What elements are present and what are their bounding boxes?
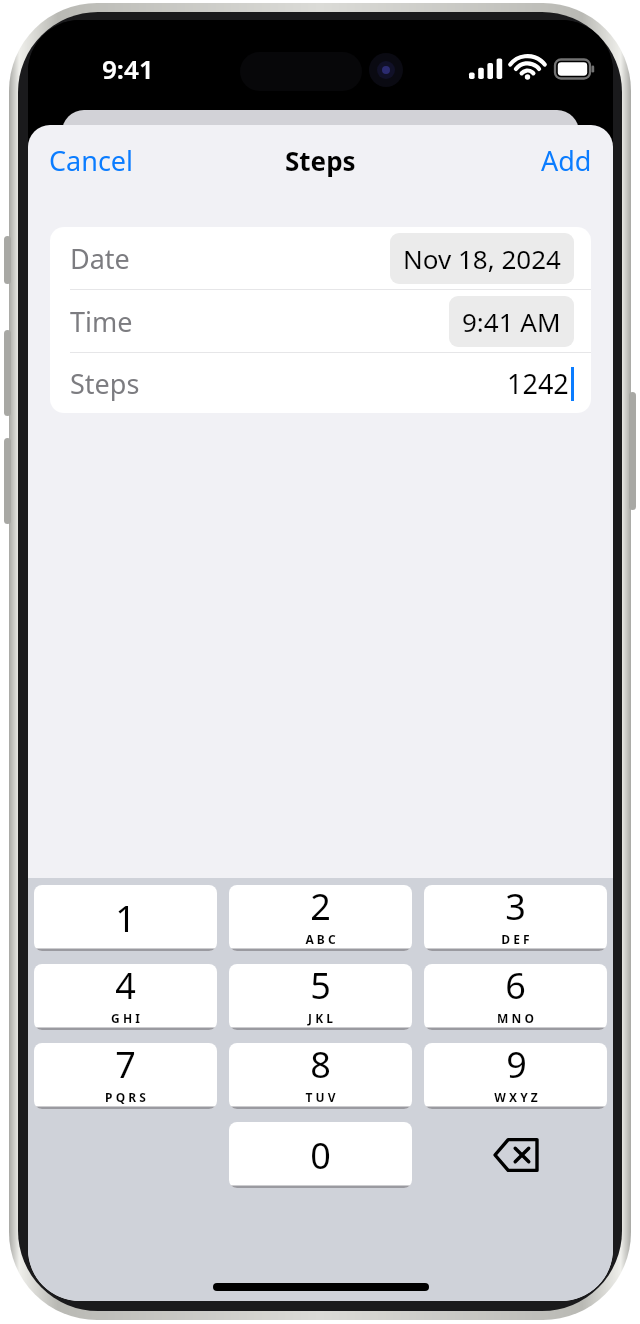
button[interactable]: Backspace — [424, 1122, 607, 1188]
button[interactable]: 3 — [424, 885, 607, 951]
staticText: 2 — [310, 885, 331, 931]
button[interactable]: 0 — [229, 1122, 412, 1188]
staticText: Cancel — [49, 142, 134, 179]
staticText: 5 — [310, 964, 331, 1010]
button[interactable]: Add — [532, 135, 601, 186]
staticText: J K L — [308, 1010, 333, 1026]
staticText: T U V — [305, 1089, 336, 1105]
button[interactable]: 6 — [424, 964, 607, 1030]
staticText: 8 — [310, 1043, 331, 1089]
button[interactable]: 9:41 AM — [449, 296, 574, 347]
staticText: Add — [541, 142, 592, 179]
button[interactable]: 5 — [229, 964, 412, 1030]
staticText: 9:41 AM — [462, 304, 561, 339]
staticText: 0 — [310, 1131, 331, 1180]
button[interactable]: 9 — [424, 1043, 607, 1109]
staticText: Steps — [70, 365, 140, 402]
button[interactable]: Cancel — [40, 135, 143, 186]
staticText: G H I — [111, 1010, 140, 1026]
button[interactable]: 8 — [229, 1043, 412, 1109]
button[interactable]: Nov 18, 2024 — [390, 233, 574, 284]
staticText: P Q R S — [105, 1089, 146, 1105]
button[interactable]: Time — [50, 290, 591, 352]
button[interactable]: 4 — [34, 964, 217, 1030]
button[interactable]: 7 — [34, 1043, 217, 1109]
staticText: 4 — [115, 964, 136, 1010]
staticText: 3 — [505, 885, 526, 931]
staticText: W X Y Z — [494, 1089, 538, 1105]
staticText: A B C — [305, 931, 336, 947]
button[interactable]: Date — [50, 227, 591, 289]
staticText: Nov 18, 2024 — [403, 241, 561, 276]
staticText: 9:41 — [102, 51, 154, 86]
staticText: Time — [70, 303, 133, 340]
staticText: Date — [70, 240, 130, 277]
staticText: 1 — [115, 894, 136, 943]
staticText: Steps — [285, 143, 356, 178]
staticText: M N O — [497, 1010, 534, 1026]
staticText: 9 — [506, 1043, 527, 1089]
staticText: 1242 — [507, 365, 569, 402]
button[interactable]: 1 — [34, 885, 217, 951]
staticText: D E F — [501, 931, 530, 947]
staticText: 7 — [115, 1043, 136, 1089]
button[interactable]: 2 — [229, 885, 412, 951]
staticText: 6 — [505, 964, 526, 1010]
button[interactable]: Steps — [50, 353, 591, 413]
